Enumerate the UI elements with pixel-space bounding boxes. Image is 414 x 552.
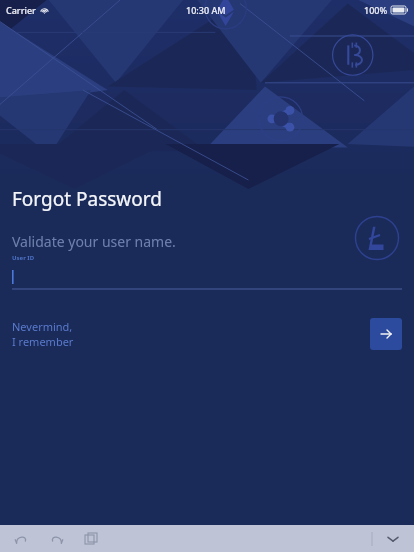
staticText: Nevermind, bbox=[12, 319, 73, 334]
button[interactable]: Submit bbox=[370, 318, 402, 350]
staticText: User ID bbox=[12, 254, 35, 262]
staticText: Carrier bbox=[6, 4, 36, 16]
button[interactable] bbox=[12, 262, 402, 290]
button[interactable]: Paste bbox=[80, 528, 102, 550]
button[interactable]: Nevermind, bbox=[12, 319, 74, 349]
staticText: I remember bbox=[12, 334, 74, 349]
button[interactable]: Redo bbox=[45, 528, 67, 550]
button[interactable]: Undo bbox=[10, 528, 32, 550]
staticText: 10:30 AM bbox=[186, 4, 226, 16]
staticText: Validate your user name. bbox=[12, 232, 176, 251]
staticText: Forgot Password bbox=[12, 186, 162, 212]
button[interactable]: Hide keyboard bbox=[382, 528, 404, 550]
staticText: 100% bbox=[364, 4, 388, 16]
